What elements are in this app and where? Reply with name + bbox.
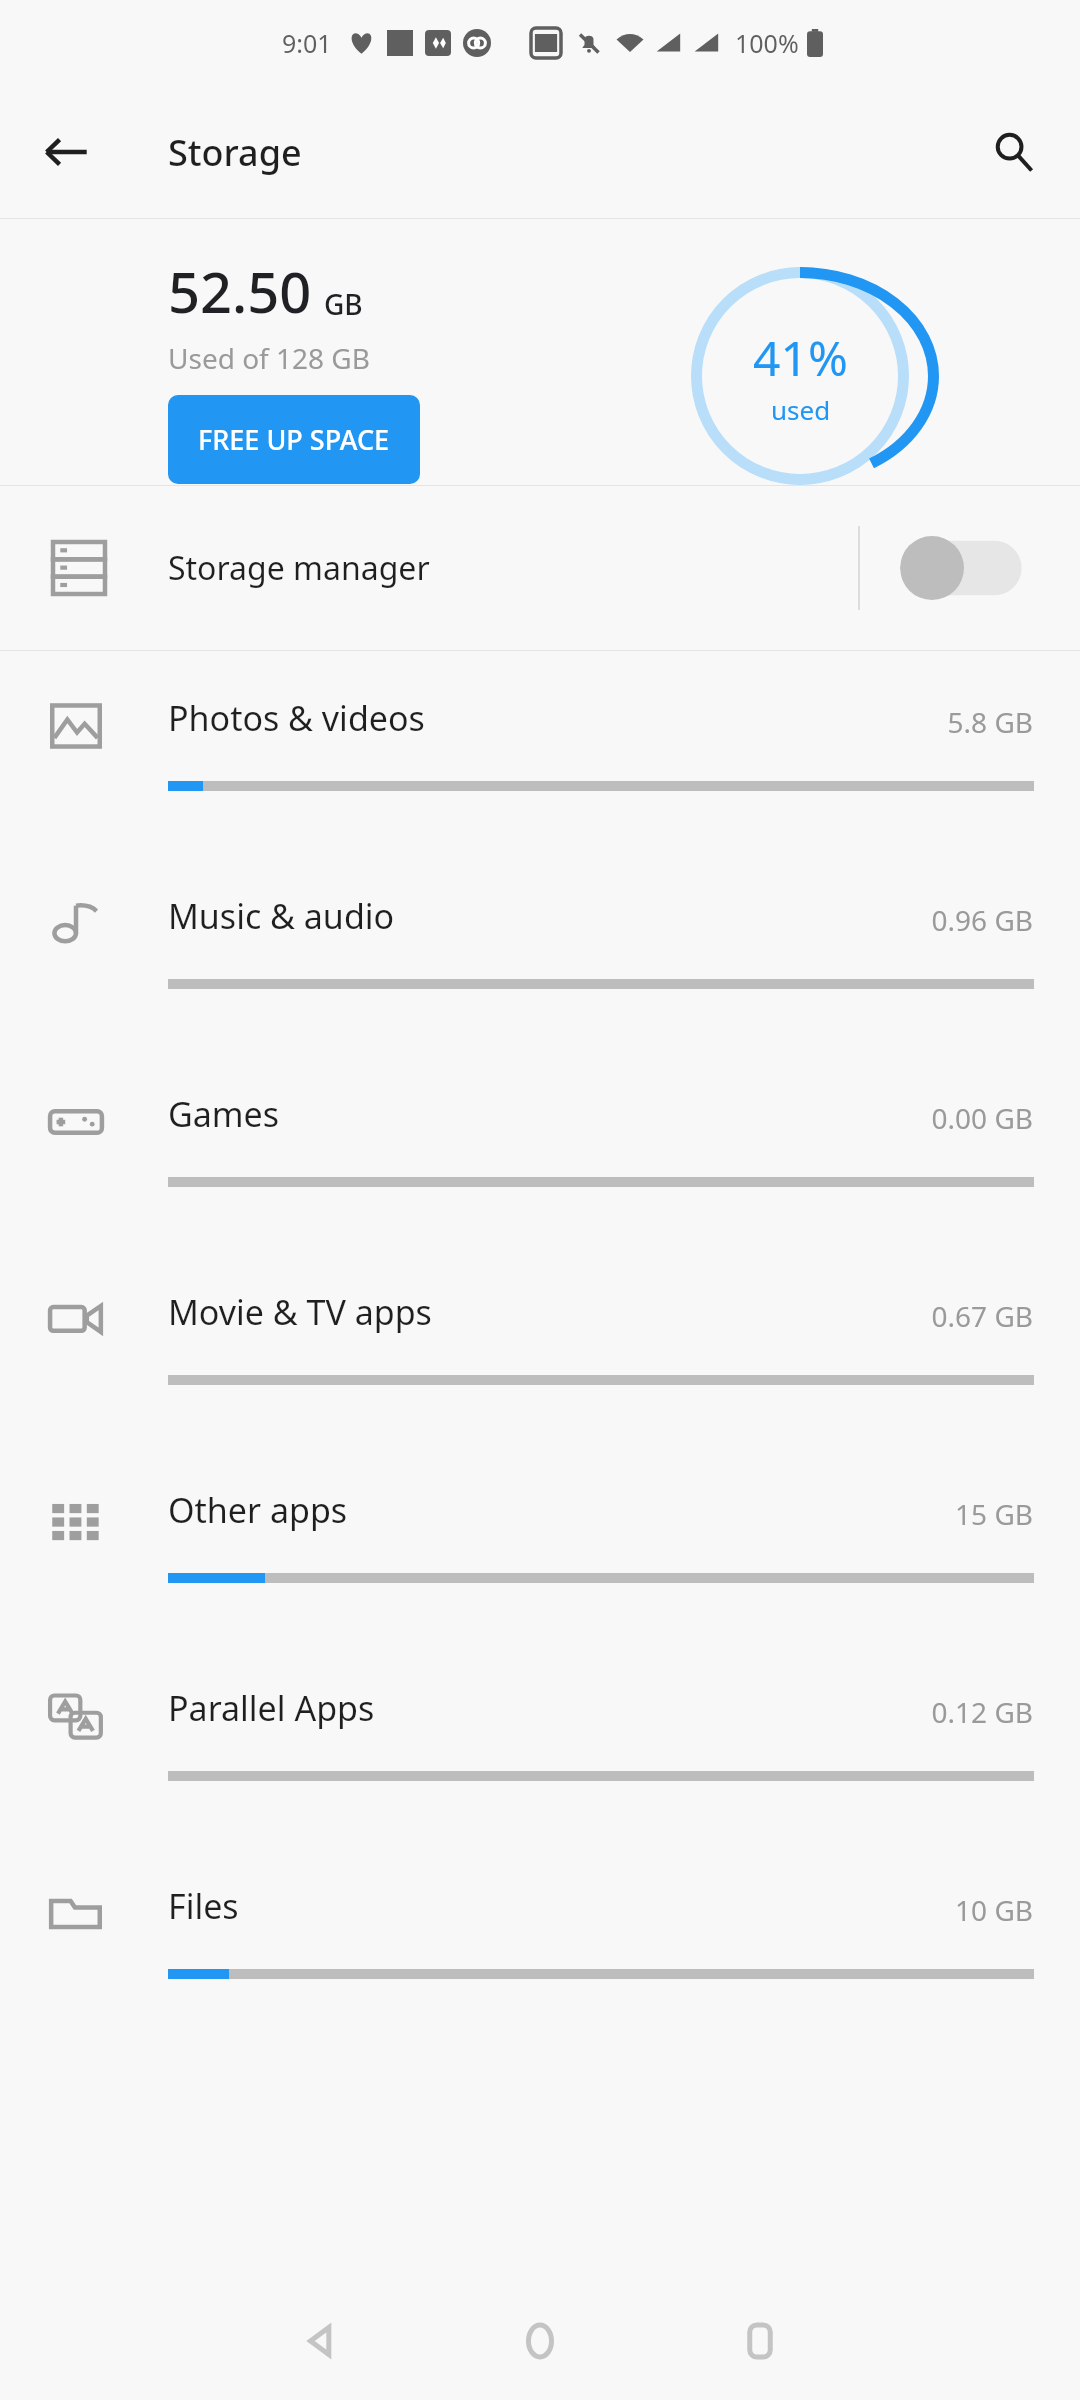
button[interactable]: Storage manager	[0, 486, 1080, 650]
button[interactable]: Back	[28, 114, 104, 190]
button[interactable]: Other apps	[0, 1443, 1080, 1641]
staticText: 9:01	[282, 26, 332, 60]
staticText: Used of 128 GB	[168, 339, 370, 377]
staticText: Files	[168, 1883, 239, 1929]
staticText: Games	[168, 1091, 280, 1137]
staticText: used	[771, 392, 831, 427]
button[interactable]: Files	[0, 1839, 1080, 2037]
staticText: Storage	[168, 128, 302, 177]
staticText: 0.96 GB	[931, 901, 1033, 939]
staticText: 52.50	[168, 253, 312, 329]
button[interactable]: Movie & TV apps	[0, 1245, 1080, 1443]
staticText: GB	[324, 285, 363, 323]
button[interactable]: Recents	[718, 2299, 802, 2383]
staticText: FREE UP SPACE	[198, 421, 390, 458]
staticText: Music & audio	[168, 893, 395, 939]
button[interactable]: Parallel Apps	[0, 1641, 1080, 1839]
staticText: Photos & videos	[168, 695, 425, 741]
staticText: Other apps	[168, 1487, 348, 1533]
button[interactable]: Games	[0, 1047, 1080, 1245]
staticText: 0.12 GB	[931, 1693, 1033, 1731]
staticText: 41%	[753, 325, 848, 390]
staticText: 100%	[735, 26, 799, 60]
staticText: 0.00 GB	[931, 1099, 1033, 1137]
button[interactable]: Search	[976, 114, 1052, 190]
button[interactable]: Home	[498, 2299, 582, 2383]
button[interactable]: Photos & videos	[0, 651, 1080, 849]
staticText: 0.67 GB	[931, 1297, 1033, 1335]
staticText: 15 GB	[955, 1495, 1033, 1533]
staticText: 10 GB	[955, 1891, 1033, 1929]
button[interactable]: Back	[278, 2299, 362, 2383]
button[interactable]: Storage manager toggle	[900, 528, 1028, 608]
staticText: 5.8 GB	[947, 703, 1033, 741]
staticText: Storage manager	[168, 546, 430, 590]
button[interactable]: Music & audio	[0, 849, 1080, 1047]
staticText: Movie & TV apps	[168, 1289, 432, 1335]
button[interactable]: FREE UP SPACE	[168, 395, 420, 484]
staticText: Parallel Apps	[168, 1685, 375, 1731]
